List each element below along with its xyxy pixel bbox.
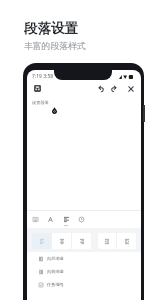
button[interactable]: Undo bbox=[95, 83, 106, 94]
button[interactable]: 向后缩进 bbox=[27, 252, 141, 265]
button[interactable]: 任务编号 bbox=[27, 278, 141, 291]
button[interactable]: Decrease indent bbox=[98, 233, 116, 249]
button[interactable]: History bbox=[74, 210, 89, 229]
button[interactable]: 向前缩进 bbox=[27, 265, 141, 278]
staticText: 丰富的段落样式 bbox=[24, 41, 86, 52]
button[interactable]: Close bbox=[125, 83, 136, 94]
button[interactable]: Keyboard bbox=[28, 210, 43, 229]
staticText: 向后缩进 bbox=[47, 256, 64, 261]
button[interactable]: Align right bbox=[72, 233, 91, 249]
staticText: 7:19 3:58 bbox=[32, 73, 54, 80]
button[interactable]: Increase indent bbox=[117, 233, 136, 249]
staticText: 设置段落 bbox=[32, 100, 49, 105]
button[interactable]: Redo bbox=[108, 83, 119, 94]
button[interactable]: Document bbox=[34, 85, 41, 92]
staticText: 段落设置 bbox=[24, 20, 78, 37]
staticText: 任务编号 bbox=[47, 282, 64, 287]
button[interactable]: Font size bbox=[43, 210, 58, 229]
button[interactable]: Align center bbox=[52, 233, 71, 249]
button[interactable]: Align left bbox=[32, 233, 51, 249]
staticText: 向前缩进 bbox=[47, 269, 64, 274]
button[interactable]: Paragraph bbox=[59, 210, 74, 229]
